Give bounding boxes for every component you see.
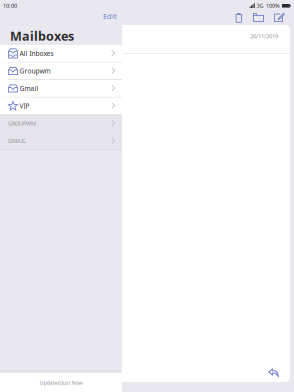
button[interactable]: Delete (230, 12, 248, 24)
staticText: Gmail (19, 84, 38, 93)
staticText: 26/11/2019 (250, 32, 278, 40)
button[interactable]: GROUPWM (0, 115, 122, 132)
staticText: GROUPWM (8, 120, 36, 127)
button[interactable]: All Inboxes (0, 45, 122, 62)
staticText: GMAIL (8, 137, 26, 145)
button[interactable]: Compose (269, 12, 290, 24)
button[interactable]: VIP (0, 97, 122, 115)
staticText: Updated Just Now (39, 379, 82, 386)
button[interactable]: Groupwm (0, 62, 122, 80)
staticText: Groupwm (19, 66, 50, 75)
staticText: All Inboxes (19, 49, 53, 58)
staticText: Edit (103, 11, 117, 21)
staticText: 3G (257, 2, 264, 9)
staticText: Mailboxes (10, 27, 74, 45)
staticText: VIP (19, 101, 29, 110)
button[interactable]: Move to folder (248, 12, 269, 24)
button[interactable]: GMAIL (0, 132, 122, 150)
button[interactable]: Edit (100, 9, 120, 23)
button[interactable]: Gmail (0, 80, 122, 97)
staticText: 10:00 (3, 2, 17, 9)
staticText: 100% (266, 2, 280, 9)
button[interactable]: Reply (268, 368, 279, 377)
